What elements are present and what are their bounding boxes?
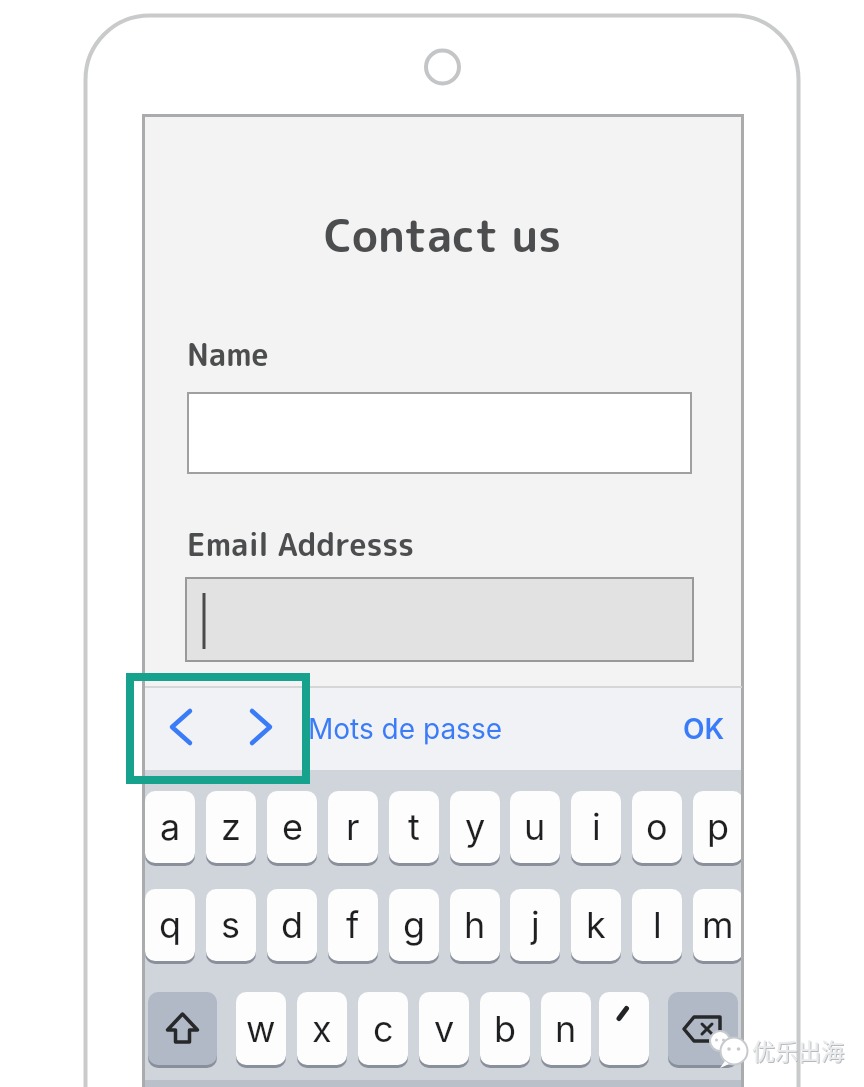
staticText: OK — [683, 712, 725, 746]
staticText: 优乐出海 — [753, 1034, 845, 1067]
button[interactable]: l — [632, 889, 682, 961]
button[interactable]: g — [389, 889, 439, 961]
staticText: Contact us — [324, 204, 562, 266]
staticText: d — [281, 903, 304, 947]
staticText: i — [592, 805, 601, 849]
staticText: t — [408, 805, 420, 849]
button[interactable]: b — [480, 992, 530, 1065]
button[interactable]: i — [571, 791, 621, 863]
button[interactable] — [668, 992, 738, 1065]
staticText: y — [465, 805, 486, 849]
staticText: Mots de passe — [308, 712, 502, 746]
staticText: w — [246, 1007, 276, 1051]
button[interactable] — [236, 702, 286, 752]
staticText: j — [531, 903, 540, 947]
staticText: x — [312, 1007, 332, 1051]
staticText: f — [346, 903, 360, 947]
button[interactable]: t — [389, 791, 439, 863]
staticText: n — [555, 1007, 577, 1051]
button[interactable]: f — [328, 889, 378, 961]
staticText: a — [160, 805, 181, 849]
staticText: Name — [187, 333, 269, 371]
button[interactable]: r — [328, 791, 378, 863]
button[interactable]: w — [236, 992, 286, 1065]
staticText: g — [403, 903, 426, 947]
staticText: o — [646, 805, 668, 849]
button[interactable] — [187, 392, 692, 474]
staticText: b — [494, 1007, 517, 1051]
button[interactable]: q — [145, 889, 195, 961]
button[interactable]: h — [450, 889, 500, 961]
button[interactable]: y — [450, 791, 500, 863]
staticText: r — [346, 805, 360, 849]
button[interactable]: j — [510, 889, 560, 961]
staticText: 优乐出海 — [752, 1033, 844, 1066]
button[interactable]: p — [693, 791, 743, 863]
button[interactable]: v — [419, 992, 469, 1065]
button[interactable]: c — [358, 992, 408, 1065]
button[interactable]: k — [571, 889, 621, 961]
staticText: v — [434, 1007, 455, 1051]
button[interactable]: d — [267, 889, 317, 961]
staticText: q — [159, 903, 182, 947]
button[interactable]: m — [693, 889, 743, 961]
staticText: k — [586, 903, 606, 947]
staticText: m — [702, 903, 734, 947]
button[interactable]: s — [206, 889, 256, 961]
button[interactable] — [185, 577, 694, 662]
staticText: c — [373, 1007, 394, 1051]
staticText: Email Addresss — [187, 523, 415, 561]
staticText: u — [524, 805, 546, 849]
button[interactable] — [156, 702, 206, 752]
button[interactable]: OK — [664, 687, 744, 770]
staticText: l — [653, 903, 662, 947]
button[interactable]: n — [541, 992, 591, 1065]
staticText: s — [221, 903, 241, 947]
button[interactable]: o — [632, 791, 682, 863]
button[interactable] — [148, 992, 217, 1065]
button[interactable]: z — [206, 791, 256, 863]
staticText: z — [221, 805, 241, 849]
button[interactable]: x — [297, 992, 347, 1065]
button[interactable] — [599, 992, 649, 1065]
staticText: e — [282, 805, 303, 849]
staticText: p — [707, 805, 730, 849]
button[interactable]: u — [510, 791, 560, 863]
button[interactable]: e — [267, 791, 317, 863]
button[interactable]: a — [145, 791, 195, 863]
staticText: h — [464, 903, 486, 947]
